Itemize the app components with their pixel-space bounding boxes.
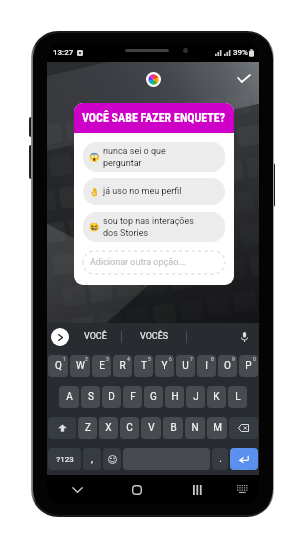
button[interactable]: D xyxy=(102,386,121,408)
staticText: 7 xyxy=(190,356,193,362)
button[interactable]: B xyxy=(163,417,183,439)
staticText: Adicionar outra opção... xyxy=(90,257,186,268)
staticText: 1 xyxy=(63,356,66,362)
button[interactable]: Recentes xyxy=(167,475,227,504)
staticText: J xyxy=(193,391,199,403)
staticText: Y xyxy=(161,360,168,372)
button[interactable]: K xyxy=(207,386,226,408)
staticText: P xyxy=(245,360,252,372)
button[interactable]: C xyxy=(120,417,139,439)
button[interactable]: Emoji xyxy=(103,448,121,470)
button[interactable]: . xyxy=(212,448,228,470)
staticText: . xyxy=(219,453,222,465)
button[interactable]: Escolher cor xyxy=(141,67,165,91)
button[interactable]: P xyxy=(239,355,258,377)
staticText: 9 xyxy=(232,356,235,362)
staticText: 13:27 xyxy=(53,48,74,57)
staticText: 4 xyxy=(127,356,130,362)
staticText: , xyxy=(91,453,93,465)
staticText: D xyxy=(108,391,115,403)
staticText: já uso no meu perfil xyxy=(103,186,219,197)
staticText: S xyxy=(88,391,94,403)
button[interactable]: H xyxy=(165,386,184,408)
staticText: H xyxy=(171,391,179,403)
button[interactable]: I xyxy=(197,355,216,377)
staticText: sou top nas interações dos Stories xyxy=(103,216,219,238)
button[interactable]: Concluir xyxy=(231,65,257,91)
staticText: 👌 xyxy=(89,187,100,197)
staticText: K xyxy=(213,391,220,403)
button[interactable]: L xyxy=(228,386,247,408)
button[interactable]: R xyxy=(113,355,132,377)
staticText: B xyxy=(170,422,177,434)
button[interactable]: , xyxy=(83,448,101,470)
staticText: T xyxy=(141,360,147,372)
button[interactable]: T xyxy=(134,355,153,377)
staticText: nunca sei o que perguntar xyxy=(103,146,219,168)
staticText: X xyxy=(105,422,112,434)
button[interactable]: X xyxy=(99,417,118,439)
staticText: VOCÊS xyxy=(140,331,169,342)
button[interactable]: Maiúsculas xyxy=(48,417,76,439)
button[interactable]: N xyxy=(185,417,205,439)
staticText: I xyxy=(205,360,208,372)
button[interactable]: W xyxy=(70,355,90,377)
staticText: ?123 xyxy=(56,455,74,464)
button[interactable]: G xyxy=(144,386,163,408)
button[interactable]: Adicionar outra opção... xyxy=(83,251,225,274)
button[interactable]: Mais sugestões xyxy=(51,328,69,346)
button[interactable]: A xyxy=(59,386,79,408)
staticText: Z xyxy=(85,422,91,434)
button[interactable]: Alternar teclado xyxy=(227,475,259,504)
button[interactable]: ?123 xyxy=(48,448,81,470)
button[interactable]: F xyxy=(123,386,142,408)
button[interactable]: Fechar teclado xyxy=(47,475,107,504)
button[interactable]: O xyxy=(218,355,237,377)
staticText: 😱 xyxy=(89,152,100,162)
staticText: 39% xyxy=(233,48,248,57)
button[interactable]: S xyxy=(81,386,100,408)
button[interactable]: Início xyxy=(107,475,167,504)
staticText: O xyxy=(224,360,231,372)
staticText: 0 xyxy=(253,356,256,362)
button[interactable]: VOCÊS xyxy=(122,323,186,350)
button[interactable]: Enter xyxy=(230,448,258,470)
button[interactable]: M xyxy=(207,417,227,439)
button[interactable]: Apagar xyxy=(229,417,258,439)
staticText: 8 xyxy=(211,356,214,362)
button[interactable]: E xyxy=(92,355,111,377)
staticText: VOCÊ SABE FAZER ENQUETE? xyxy=(82,111,226,125)
staticText: E xyxy=(99,360,105,372)
button[interactable]: J xyxy=(186,386,205,408)
staticText: 😆 xyxy=(89,222,100,232)
staticText: G xyxy=(150,391,157,403)
button[interactable]: 👌 xyxy=(83,178,225,205)
staticText: C xyxy=(126,422,133,434)
staticText: V xyxy=(148,422,155,434)
staticText: F xyxy=(130,391,136,403)
staticText: VOCÊ xyxy=(84,331,107,342)
button[interactable]: Entrada por voz xyxy=(233,323,255,350)
staticText: R xyxy=(119,360,126,372)
staticText: 3 xyxy=(106,356,109,362)
staticText: 2 xyxy=(85,356,88,362)
button[interactable]: V xyxy=(141,417,161,439)
button[interactable]: Z xyxy=(78,417,97,439)
button[interactable]: Q xyxy=(48,355,68,377)
button[interactable]: Y xyxy=(155,355,174,377)
staticText: U xyxy=(182,360,189,372)
staticText: W xyxy=(76,360,85,372)
staticText: N xyxy=(191,422,199,434)
button[interactable]: VOCÊ xyxy=(69,323,121,350)
button[interactable]: 😱 xyxy=(83,142,225,172)
staticText: 6 xyxy=(169,356,172,362)
staticText: L xyxy=(235,391,241,403)
staticText: A xyxy=(66,391,73,403)
button[interactable]: 😆 xyxy=(83,212,225,242)
button[interactable]: U xyxy=(176,355,195,377)
staticText: 5 xyxy=(148,356,151,362)
staticText: M xyxy=(213,422,222,434)
staticText: Q xyxy=(55,360,62,372)
